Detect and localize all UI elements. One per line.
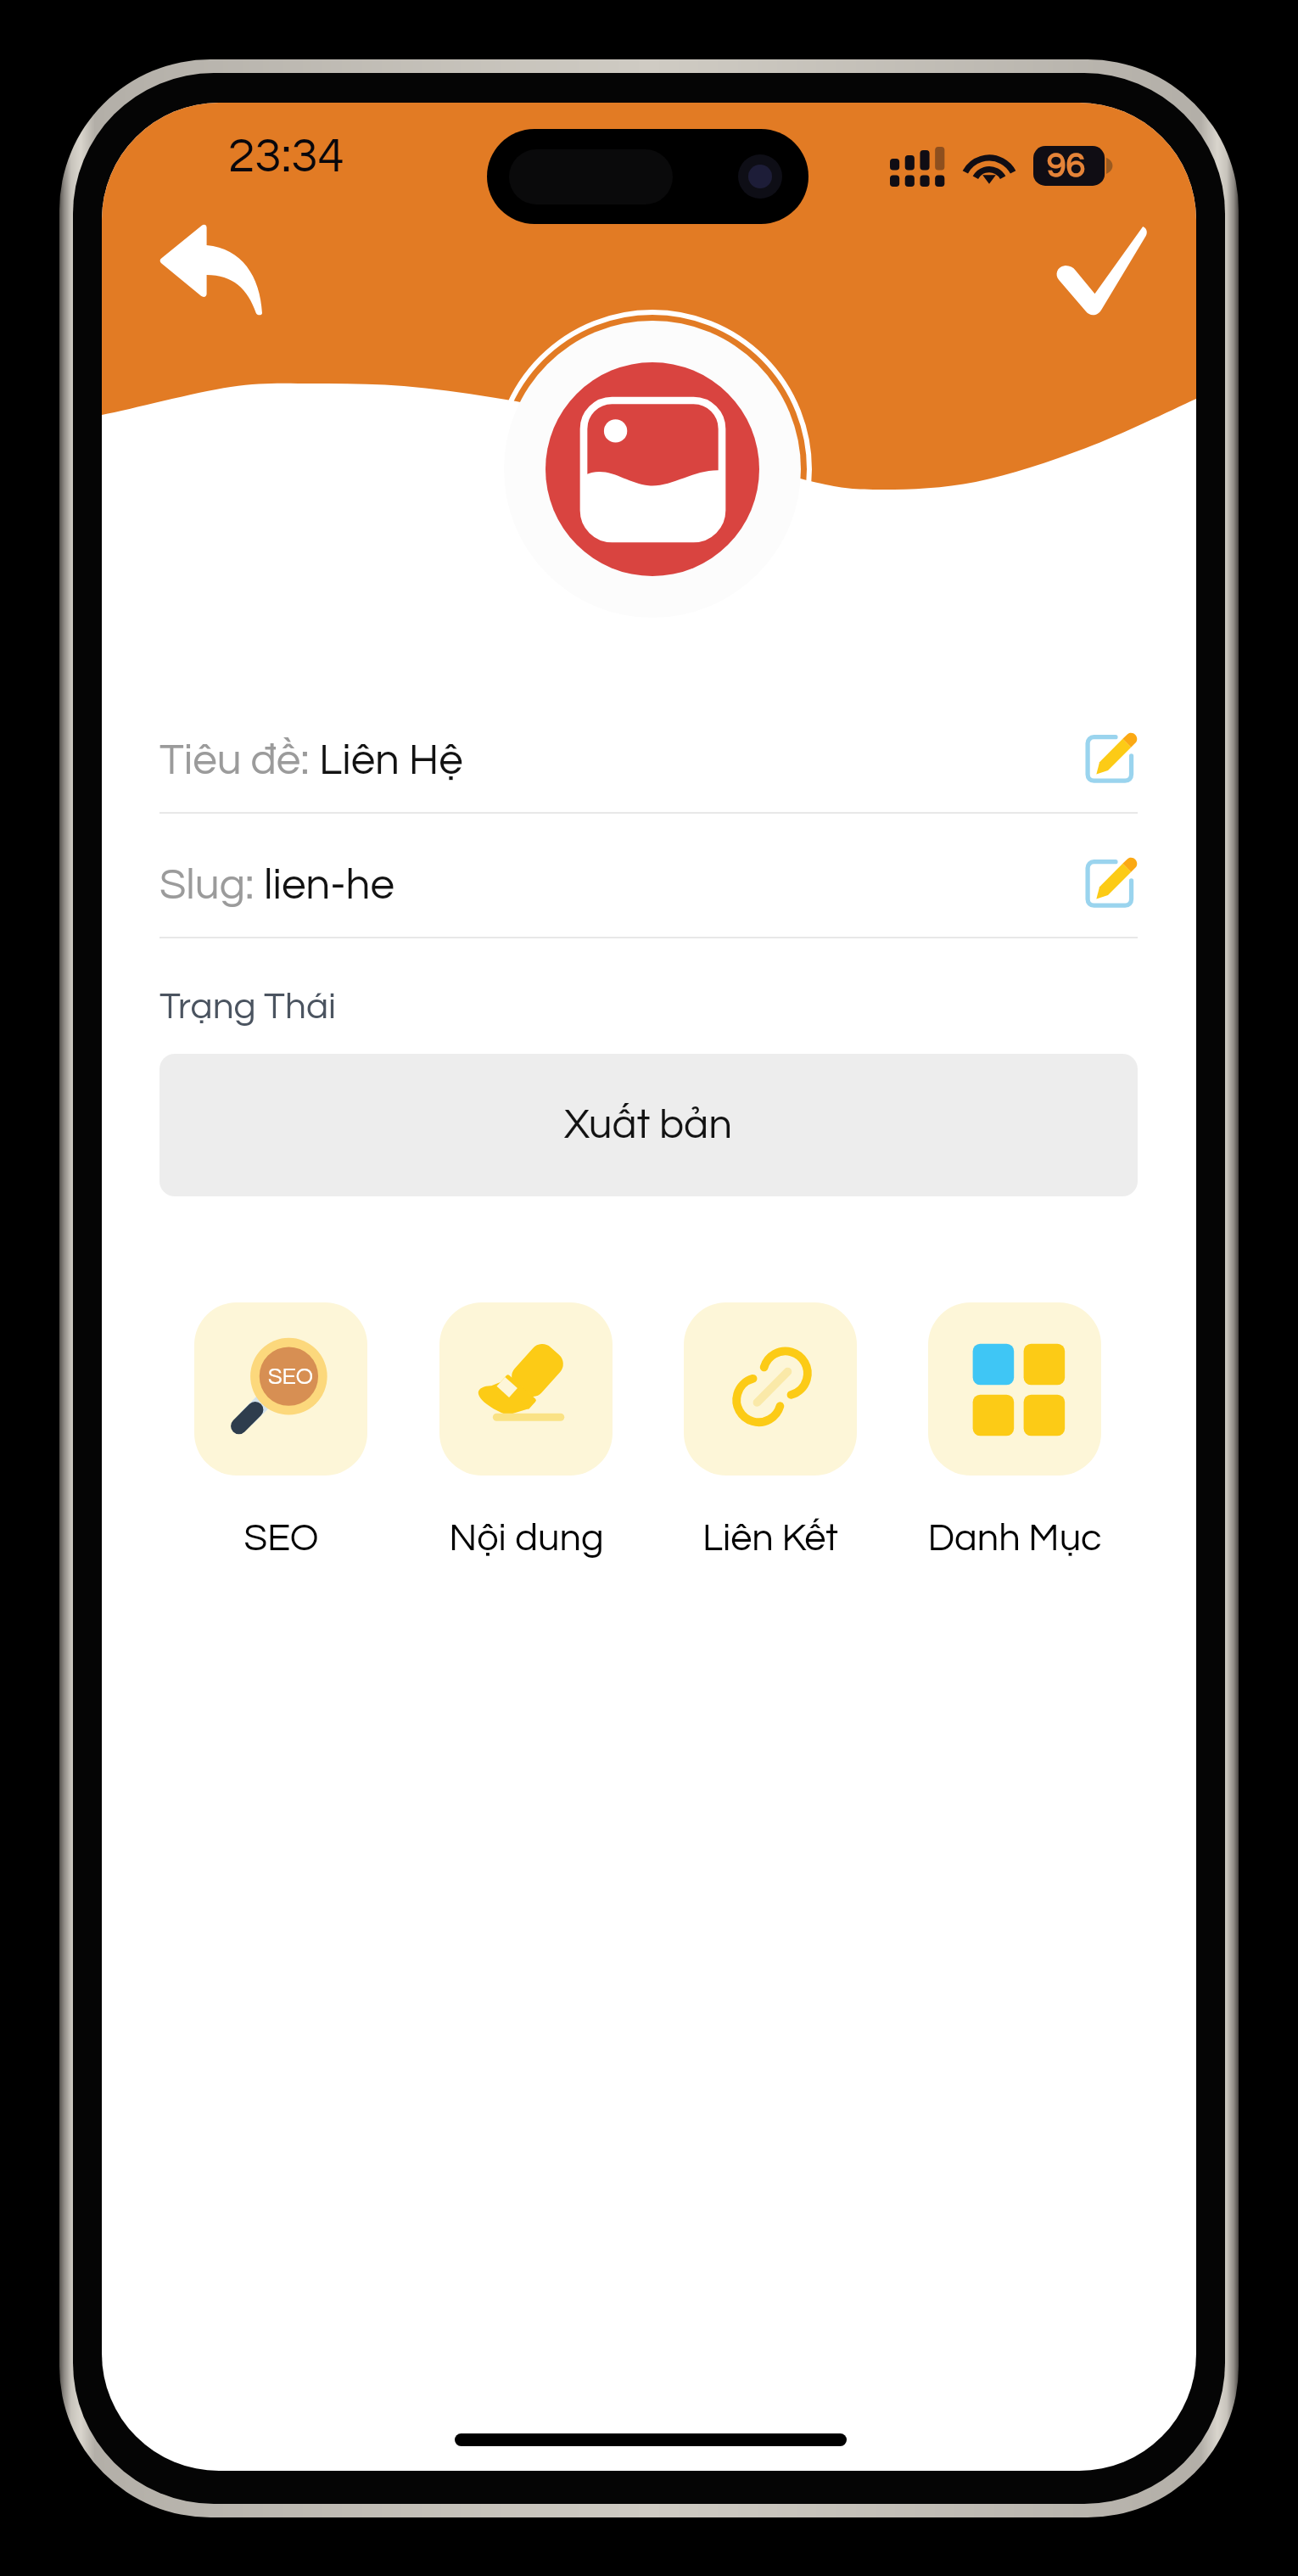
button[interactable]: SEO bbox=[177, 1302, 384, 1558]
staticText: lien-he bbox=[264, 863, 394, 908]
staticText: Liên Kết bbox=[702, 1519, 838, 1558]
staticText: 23:34 bbox=[228, 132, 344, 182]
staticText: Trạng Thái bbox=[159, 988, 337, 1026]
staticText: Nội dung bbox=[449, 1519, 604, 1558]
button[interactable]: Tiêu đề: bbox=[159, 689, 1138, 813]
button[interactable]: Slug: bbox=[159, 814, 1138, 938]
button[interactable]: Danh Mục bbox=[911, 1302, 1118, 1558]
button[interactable]: Back bbox=[122, 194, 300, 344]
button[interactable]: Change image bbox=[493, 310, 812, 629]
staticText: SEO bbox=[243, 1519, 319, 1558]
staticText: Liên Hệ bbox=[319, 738, 463, 783]
other: Edit bbox=[1085, 854, 1138, 907]
other: Edit bbox=[1085, 730, 1138, 782]
staticText: Xuất bản bbox=[564, 1104, 733, 1146]
button[interactable]: Save bbox=[1012, 196, 1190, 345]
staticText: 96 bbox=[1047, 148, 1086, 183]
staticText: Tiêu đề: bbox=[159, 738, 319, 783]
staticText: Danh Mục bbox=[927, 1519, 1102, 1558]
button[interactable]: Nội dung bbox=[422, 1302, 629, 1558]
staticText: Slug: bbox=[159, 863, 264, 908]
button[interactable]: Xuất bản bbox=[159, 1054, 1138, 1196]
staticText: SEO bbox=[268, 1365, 313, 1389]
button[interactable]: Liên Kết bbox=[667, 1302, 874, 1558]
